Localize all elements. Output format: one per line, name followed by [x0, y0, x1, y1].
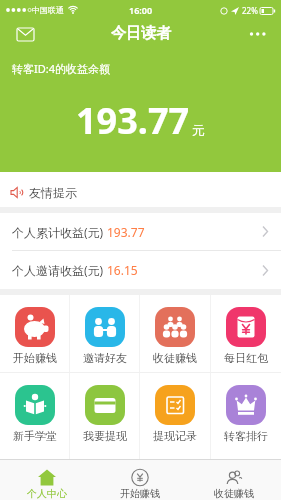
- staticText: 中国联通: [32, 5, 64, 15]
- staticText: 193.77: [107, 224, 145, 240]
- staticText: 16:00: [129, 4, 153, 16]
- button[interactable]: 提现记录: [140, 373, 210, 459]
- staticText: 提现记录: [153, 429, 197, 443]
- staticText: 16.15: [107, 262, 138, 278]
- staticText: 个人中心: [27, 487, 67, 500]
- staticText: 新手学堂: [13, 429, 57, 443]
- button[interactable]: 开始赚钱: [0, 295, 69, 372]
- staticText: 我要提现: [83, 429, 127, 443]
- button[interactable]: 每日红包: [211, 295, 281, 372]
- staticText: 元: [192, 122, 205, 138]
- button[interactable]: 收徒赚钱: [187, 460, 281, 500]
- staticText: 每日红包: [224, 351, 268, 365]
- staticText: 今日读者: [111, 24, 171, 43]
- button[interactable]: [10, 22, 40, 46]
- button[interactable]: 新手学堂: [0, 373, 69, 459]
- button[interactable]: 转客排行: [211, 373, 281, 459]
- button[interactable]: 我要提现: [70, 373, 139, 459]
- staticText: 收徒赚钱: [214, 487, 254, 500]
- button[interactable]: 开始赚钱: [93, 460, 187, 500]
- staticText: 转客ID:4的收益余额: [12, 61, 110, 76]
- staticText: 友情提示: [29, 185, 77, 200]
- button[interactable]: 收徒赚钱: [140, 295, 210, 372]
- staticText: 22%: [242, 5, 258, 16]
- staticText: 193.77: [76, 96, 190, 145]
- staticText: 个人累计收益(元): [12, 224, 107, 240]
- button[interactable]: 个人累计收益(元): [0, 213, 281, 250]
- staticText: 收徒赚钱: [153, 351, 197, 365]
- button[interactable]: 个人邀请收益(元): [0, 251, 281, 289]
- staticText: 开始赚钱: [13, 351, 57, 365]
- button[interactable]: 个人中心: [0, 460, 93, 500]
- staticText: 个人邀请收益(元): [12, 262, 107, 278]
- button[interactable]: 友情提示: [0, 172, 281, 207]
- staticText: 邀请好友: [83, 351, 127, 365]
- staticText: 开始赚钱: [120, 487, 160, 500]
- button[interactable]: 邀请好友: [70, 295, 139, 372]
- staticText: 转客排行: [224, 429, 268, 443]
- button[interactable]: [243, 22, 273, 46]
